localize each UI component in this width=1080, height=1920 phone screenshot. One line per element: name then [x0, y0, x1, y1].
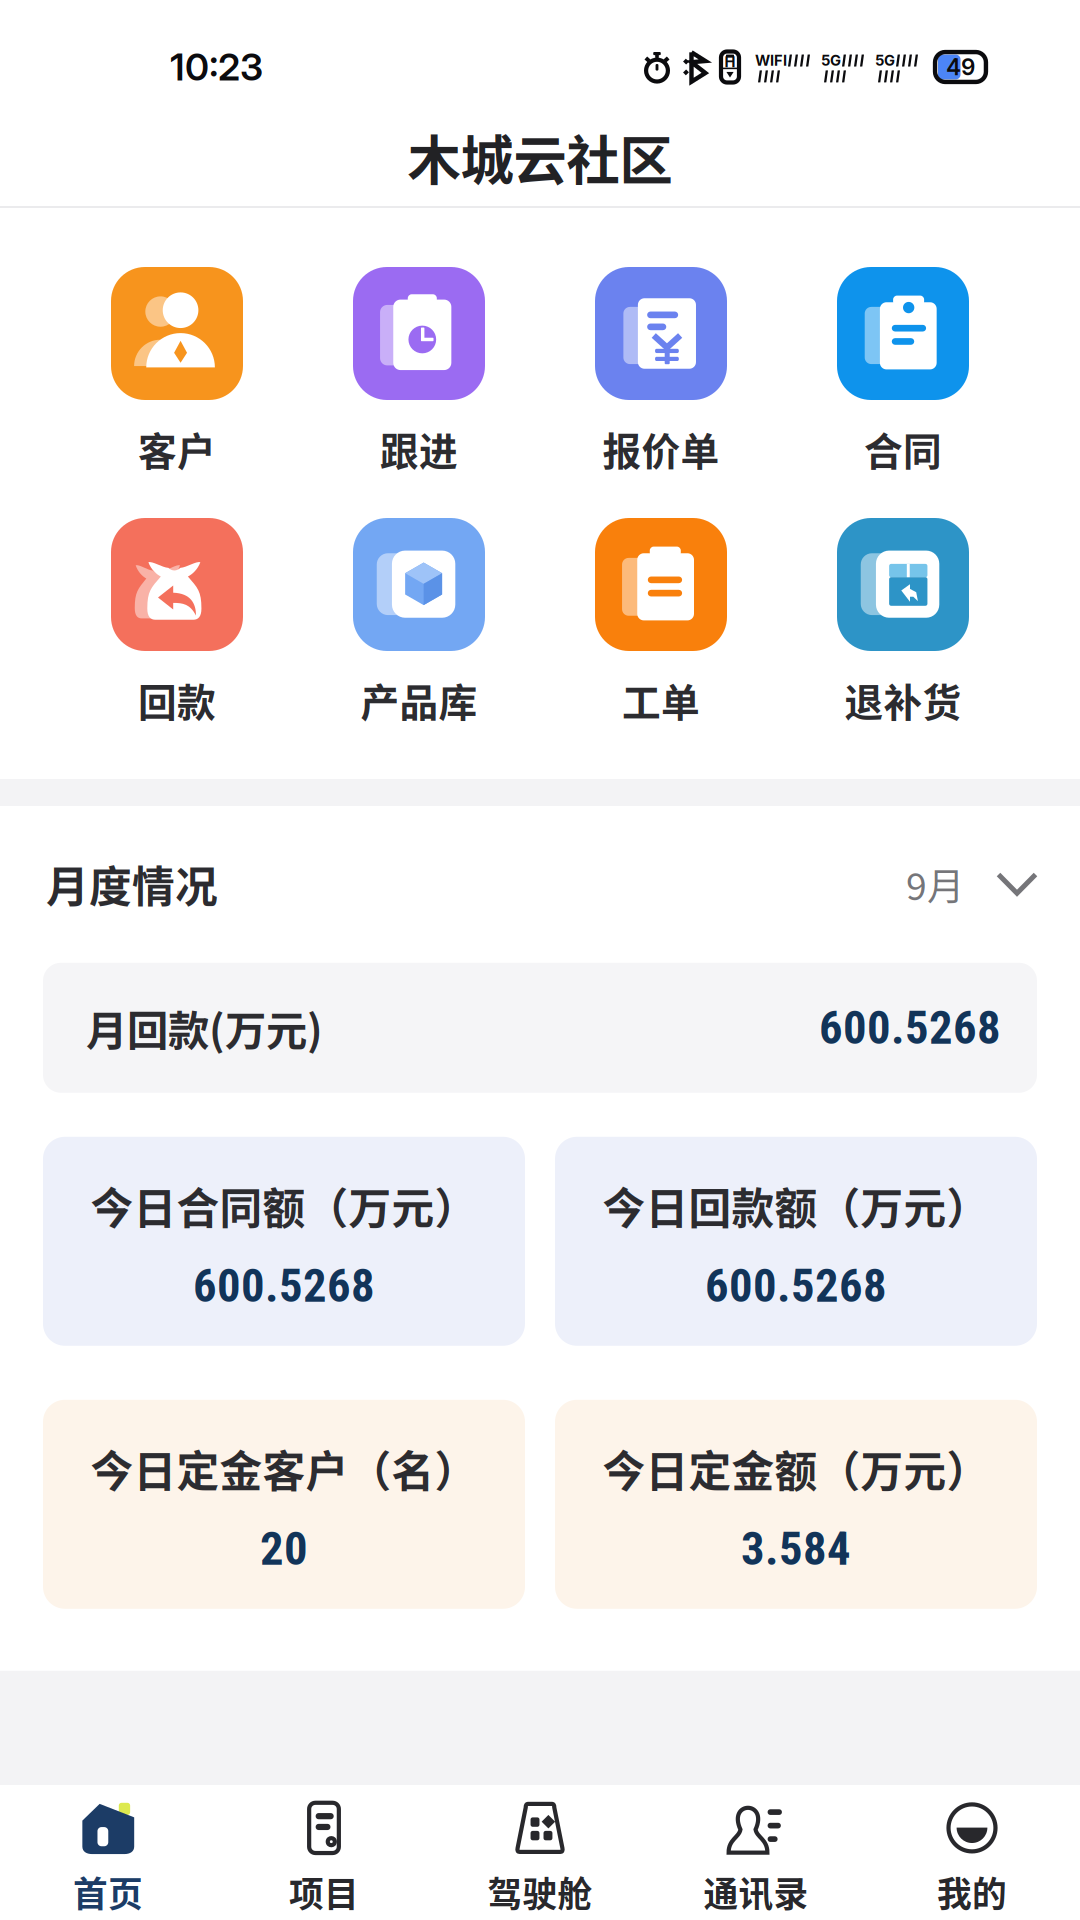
staticText: 600.5268: [193, 1259, 375, 1313]
button[interactable]: 客户: [56, 267, 298, 479]
staticText: H: [724, 53, 735, 71]
button[interactable]: 今日回款额（万元）: [555, 1137, 1037, 1346]
staticText: 今日定金额（万元）: [602, 1438, 989, 1500]
button[interactable]: 回款: [56, 518, 298, 730]
staticText: 月回款(万元): [86, 998, 323, 1058]
staticText: 首页: [73, 1867, 143, 1917]
staticText: 通讯录: [703, 1867, 808, 1917]
button[interactable]: 工单: [540, 518, 782, 730]
staticText: 客户: [138, 421, 216, 477]
button[interactable]: 退补货: [782, 518, 1024, 730]
button[interactable]: 今日定金客户（名）: [43, 1400, 525, 1609]
staticText: 驾驶舱: [487, 1867, 592, 1917]
staticText: 9月: [906, 857, 964, 911]
button[interactable]: 9月: [906, 857, 1038, 911]
staticText: 项目: [289, 1867, 359, 1917]
button[interactable]: 通讯录: [648, 1801, 864, 1917]
staticText: 产品库: [360, 672, 477, 728]
staticText: 月度情况: [46, 853, 218, 915]
staticText: 5G: [875, 52, 895, 69]
button[interactable]: 报价单: [540, 267, 782, 479]
button[interactable]: 合同: [782, 267, 1024, 479]
button[interactable]: 驾驶舱: [432, 1801, 648, 1917]
staticText: 今日定金客户（名）: [90, 1438, 477, 1500]
staticText: 5G: [821, 52, 841, 69]
staticText: WIFI: [755, 52, 787, 69]
staticText: 木城云社区: [407, 118, 672, 196]
button[interactable]: 产品库: [298, 518, 540, 730]
staticText: 今日合同额（万元）: [90, 1175, 477, 1237]
staticText: 退补货: [844, 672, 961, 728]
staticText: 今日回款额（万元）: [602, 1175, 989, 1237]
staticText: 跟进: [380, 421, 458, 477]
staticText: 报价单: [602, 421, 719, 477]
button[interactable]: 今日合同额（万元）: [43, 1137, 525, 1346]
staticText: 合同: [864, 421, 942, 477]
staticText: 工单: [622, 672, 700, 728]
staticText: 回款: [138, 672, 216, 728]
staticText: 600.5268: [819, 1000, 1001, 1055]
staticText: 600.5268: [705, 1259, 887, 1313]
staticText: 20: [260, 1522, 308, 1576]
staticText: 49: [946, 53, 975, 81]
staticText: 10:23: [170, 44, 263, 90]
button[interactable]: 跟进: [298, 267, 540, 479]
staticText: 3.584: [741, 1522, 851, 1576]
staticText: 我的: [937, 1867, 1007, 1917]
button[interactable]: 今日定金额（万元）: [555, 1400, 1037, 1609]
button[interactable]: 项目: [216, 1801, 432, 1917]
button[interactable]: 首页: [0, 1801, 216, 1917]
button[interactable]: 我的: [864, 1801, 1080, 1917]
